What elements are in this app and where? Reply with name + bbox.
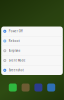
- button[interactable]: Silent Mode: [1, 56, 63, 65]
- button[interactable]: Safari: [34, 83, 42, 91]
- button[interactable]: Power Off: [1, 26, 63, 36]
- button[interactable]: Contacts: [22, 83, 30, 91]
- button[interactable]: Screenshot: [1, 65, 63, 75]
- staticText: Power Off: [9, 29, 23, 33]
- staticText: Reboot: [9, 39, 20, 43]
- button[interactable]: Phone: [9, 83, 17, 91]
- button[interactable]: Mail: [47, 83, 55, 91]
- staticText: Airplane: [9, 49, 21, 52]
- button[interactable]: Reboot: [1, 36, 63, 46]
- staticText: Screenshot: [9, 68, 24, 72]
- button[interactable]: Airplane: [1, 46, 63, 55]
- staticText: Silent Mode: [9, 59, 26, 62]
